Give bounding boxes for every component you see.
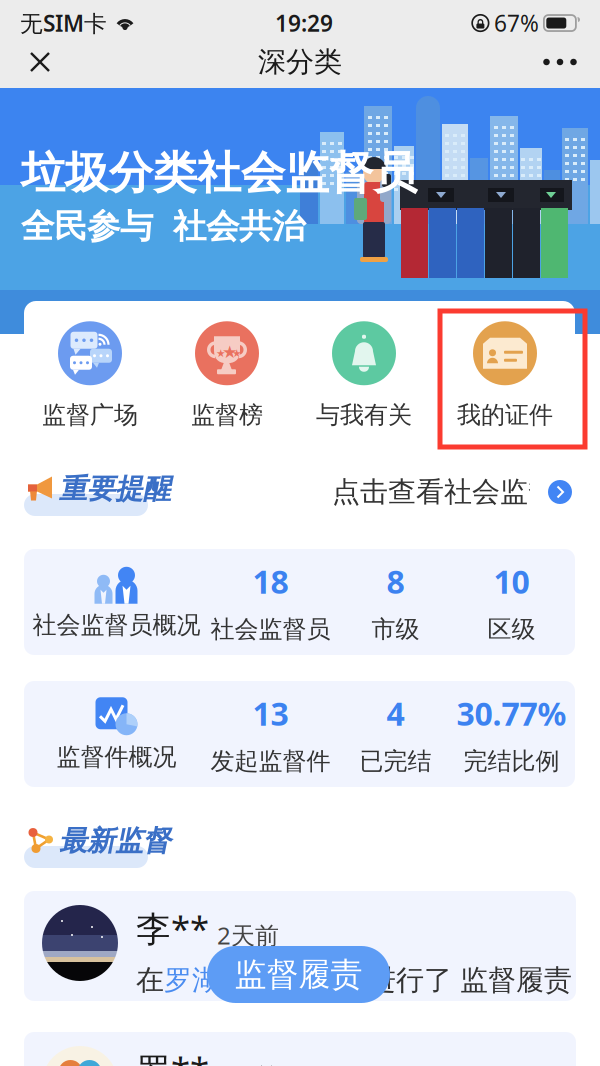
staticText: 67% [494,8,539,38]
staticText: 莲塘街道 [248,963,360,997]
staticText: 社会监督员概况 [32,610,200,640]
staticText: 区级 [487,614,535,644]
staticText: 监督榜 [191,400,263,430]
button[interactable]: 点击查看社会监督员 [332,475,572,509]
staticText: 重要提醒 [59,472,171,506]
staticText: 我的证件 [457,400,553,430]
staticText: 点击查看社会监督员 [332,475,584,509]
staticText: 最新监督 [59,824,171,858]
staticText: 2天前 [217,919,279,951]
button[interactable]: 罗** [24,1032,576,1066]
staticText: 10 [493,560,529,602]
button[interactable]: ★ [158,307,295,443]
button[interactable]: More [536,37,584,87]
staticText: 4 [386,692,404,734]
staticText: 深分类 [258,45,342,79]
staticText: 完结比例 [463,746,559,776]
staticText: 8 [386,560,404,602]
button[interactable]: 与我有关 [295,307,432,443]
button[interactable]: 李** [24,891,576,1001]
button[interactable]: Close [16,37,64,87]
staticText: 垃圾分类社会监督员 [21,146,417,200]
staticText: 13 [252,692,288,734]
staticText: 李** [136,905,209,951]
staticText: 无SIM卡 [20,8,107,38]
button[interactable]: 监督履责 [207,946,390,1003]
staticText: 监督履责 [234,955,362,994]
staticText: 与我有关 [316,400,412,430]
staticText: 监督件概况 [56,742,176,772]
staticText: 30.77% [456,692,566,734]
staticText: 市级 [371,614,419,644]
staticText: 2天前 [217,1060,279,1066]
staticText: 发起监督件 [210,746,330,776]
staticText: ★ [232,347,242,359]
staticText: 全民参与 社会共治 [21,206,305,247]
staticText: 在 [136,963,164,997]
staticText: 社会监督员 [210,614,330,644]
staticText: 进行了 监督履责 [360,963,572,997]
staticText: 已完结 [359,746,431,776]
button[interactable]: 监督广场 [21,307,158,443]
staticText: ★ [222,342,238,362]
staticText: 罗湖区 [164,963,248,997]
staticText: ★ [216,347,226,359]
staticText: 19:29 [275,8,333,38]
staticText: 18 [252,560,288,602]
staticText: 监督广场 [42,400,138,430]
button[interactable]: 我的证件 [436,307,573,443]
staticText: 罗** [136,1046,209,1066]
